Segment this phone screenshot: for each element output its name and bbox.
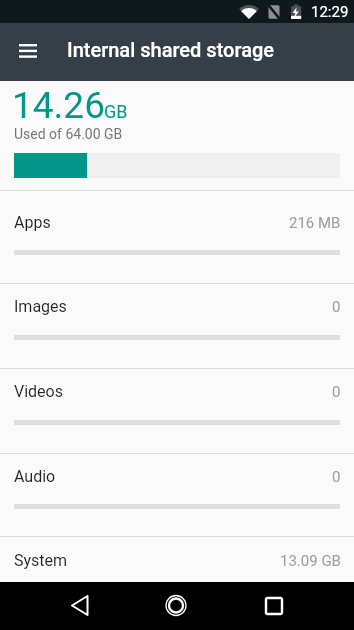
staticText: Audio — [14, 467, 56, 486]
button[interactable] — [152, 582, 200, 630]
button[interactable]: Audio — [0, 454, 354, 536]
staticText: Images — [14, 297, 67, 316]
button[interactable]: System — [0, 537, 354, 582]
staticText: Used of 64.00 GB — [14, 126, 123, 142]
staticText: 216 MB — [289, 214, 341, 232]
staticText: Internal shared storage — [67, 38, 275, 61]
staticText: GB — [104, 101, 128, 122]
staticText: Apps — [14, 213, 51, 232]
button[interactable] — [250, 582, 298, 630]
staticText: Videos — [14, 382, 63, 401]
button[interactable]: Apps — [0, 191, 354, 283]
staticText: 13.09 GB — [280, 552, 341, 570]
button[interactable] — [8, 30, 48, 70]
button[interactable] — [56, 582, 104, 630]
staticText: 12:29 — [311, 3, 349, 21]
button[interactable]: Images — [0, 284, 354, 368]
button[interactable]: Videos — [0, 369, 354, 453]
staticText: 0 — [332, 383, 341, 401]
staticText: 0 — [332, 468, 341, 486]
staticText: 14.26 — [12, 84, 105, 127]
staticText: 0 — [332, 298, 341, 316]
staticText: System — [14, 551, 68, 570]
